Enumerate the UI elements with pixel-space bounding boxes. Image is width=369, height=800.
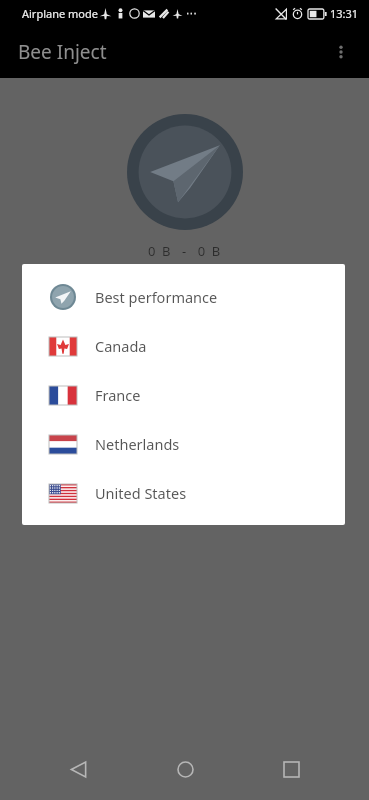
staticText: Netherlands bbox=[95, 434, 180, 454]
button[interactable]: Back bbox=[50, 741, 106, 797]
button[interactable]: Canada bbox=[22, 321, 345, 370]
button[interactable]: Recent apps bbox=[263, 741, 319, 797]
button[interactable]: Best performance bbox=[22, 272, 345, 321]
staticText: Canada bbox=[95, 336, 147, 356]
staticText: France bbox=[95, 385, 141, 405]
button[interactable]: Home bbox=[157, 741, 213, 797]
button[interactable]: France bbox=[22, 370, 345, 419]
staticText: United States bbox=[95, 483, 187, 503]
staticText: Airplane mode bbox=[22, 6, 98, 21]
staticText: Bee Inject bbox=[18, 39, 107, 65]
staticText: 13:31 bbox=[330, 6, 359, 21]
button[interactable]: More options bbox=[319, 30, 363, 74]
button[interactable]: United States bbox=[22, 468, 345, 517]
button[interactable]: Netherlands bbox=[22, 419, 345, 468]
staticText: 0 B - 0 B bbox=[148, 242, 222, 260]
staticText: Best performance bbox=[95, 287, 218, 307]
staticText: ⋯ bbox=[186, 7, 197, 20]
